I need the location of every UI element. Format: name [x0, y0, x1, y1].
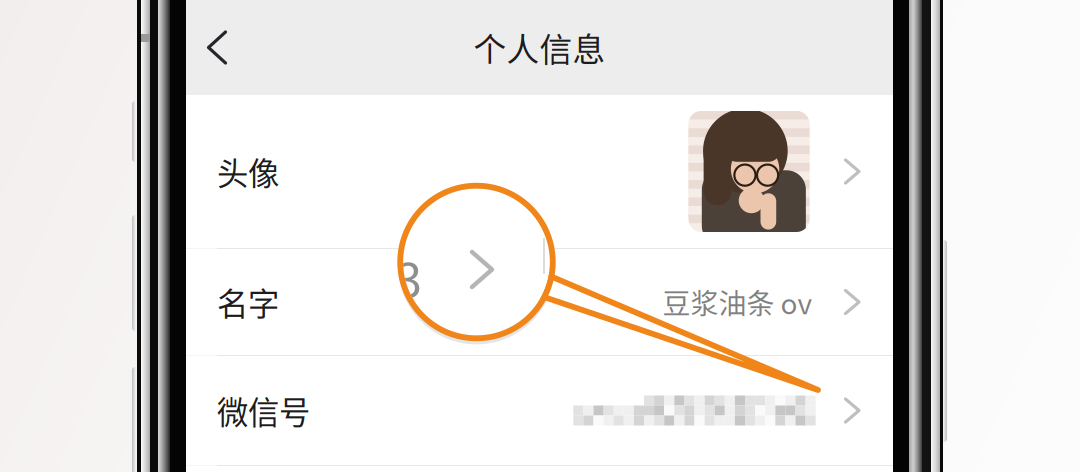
- button[interactable]: 微信号: [186, 356, 893, 465]
- staticText: 微信号: [217, 388, 310, 433]
- staticText: 个人信息: [473, 24, 605, 71]
- staticText: 豆浆油条 ov: [662, 282, 812, 322]
- button[interactable]: Back: [186, 0, 248, 95]
- button[interactable]: 头像: [186, 95, 893, 248]
- staticText: 头像: [217, 149, 279, 194]
- staticText: 名字: [217, 279, 279, 325]
- staticText: 3: [396, 243, 422, 311]
- button[interactable]: 名字: [186, 249, 893, 355]
